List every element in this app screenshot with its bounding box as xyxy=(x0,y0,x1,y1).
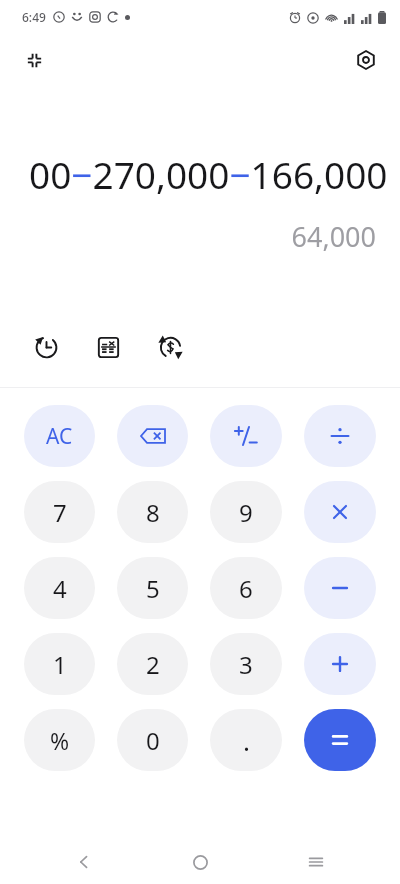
button[interactable]: 4 xyxy=(24,557,95,619)
button[interactable]: Divide xyxy=(304,405,376,467)
staticText: 64,000 xyxy=(0,218,376,255)
button[interactable]: 0 xyxy=(117,709,188,771)
button[interactable]: 1 xyxy=(24,633,95,695)
button[interactable]: 7 xyxy=(24,481,95,543)
staticText: 6 xyxy=(239,572,253,605)
staticText: 3 xyxy=(239,648,253,681)
button[interactable]: Recents xyxy=(296,842,336,882)
button[interactable]: Backspace xyxy=(117,405,188,467)
staticText: 0 xyxy=(146,724,160,757)
button[interactable]: History xyxy=(26,327,66,367)
button[interactable]: Equals xyxy=(304,709,376,771)
button[interactable]: % xyxy=(24,709,95,771)
staticText: 1 xyxy=(53,648,67,681)
button[interactable]: 6 xyxy=(210,557,282,619)
button[interactable]: 9 xyxy=(210,481,282,543)
button[interactable]: Scientific xyxy=(88,327,128,367)
staticText: 6:49 xyxy=(22,9,46,25)
button[interactable]: Multiply xyxy=(304,481,376,543)
staticText: 4 xyxy=(53,572,67,605)
staticText: 7 xyxy=(53,496,67,529)
staticText: AC xyxy=(46,422,73,451)
staticText: 00−270,000−166,000 xyxy=(29,149,388,199)
button[interactable]: 2 xyxy=(117,633,188,695)
button[interactable]: Home xyxy=(180,842,220,882)
staticText: . xyxy=(243,723,250,758)
button[interactable]: 5 xyxy=(117,557,188,619)
staticText: 8 xyxy=(146,496,160,529)
staticText: 2 xyxy=(146,648,160,681)
button[interactable]: 3 xyxy=(210,633,282,695)
button[interactable] xyxy=(210,405,282,467)
button[interactable]: Plus xyxy=(304,633,376,695)
button[interactable]: Minus xyxy=(304,557,376,619)
staticText: % xyxy=(50,725,70,756)
button[interactable]: 8 xyxy=(117,481,188,543)
button[interactable]: Back xyxy=(64,842,104,882)
staticText: 5 xyxy=(146,572,160,605)
button[interactable]: AC xyxy=(24,405,95,467)
button[interactable]: Currency converter xyxy=(150,327,190,367)
button[interactable]: Exit fullscreen xyxy=(12,38,56,82)
button[interactable]: . xyxy=(210,709,282,771)
staticText: 9 xyxy=(239,496,253,529)
button[interactable]: Settings xyxy=(344,38,388,82)
